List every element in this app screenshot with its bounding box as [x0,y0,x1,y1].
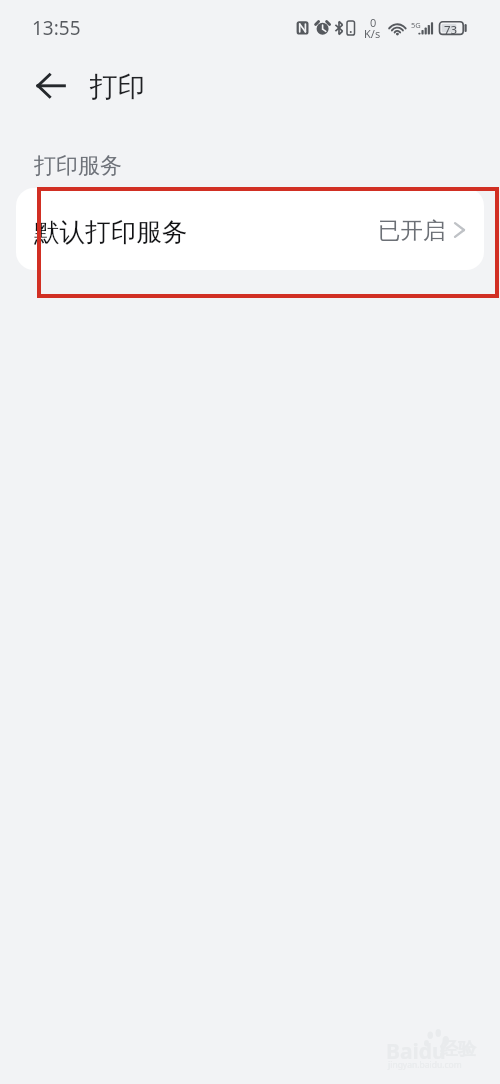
button[interactable]: 默认打印服务 [16,188,484,270]
staticText: 已开启 [378,216,446,244]
staticText: 打印 [90,70,145,105]
staticText: 13:55 [32,15,81,41]
staticText: 经验 [440,1038,476,1061]
staticText: Baidu [386,1037,446,1066]
staticText: 73 [444,22,458,38]
staticText: jingyan.baidu.com [388,1059,462,1071]
staticText: 打印服务 [34,152,122,180]
staticText: K/s [364,26,381,41]
staticText: 0 [370,15,377,30]
staticText: 5G [411,20,421,30]
staticText: 默认打印服务 [34,216,188,248]
button[interactable]: Back [22,62,70,110]
